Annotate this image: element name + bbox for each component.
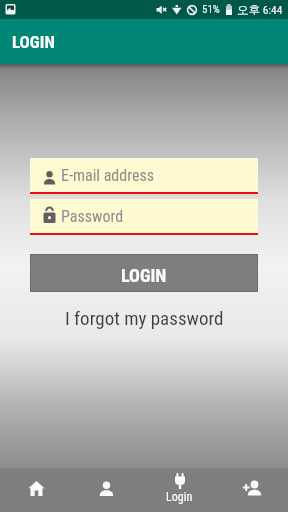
button[interactable]: E-mail address xyxy=(30,158,258,194)
button[interactable]: I forgot my password xyxy=(65,307,224,329)
button[interactable] xyxy=(216,468,288,512)
staticText: 51% xyxy=(202,3,220,16)
button[interactable]: LOGIN xyxy=(30,254,258,292)
button[interactable]: Login xyxy=(144,468,216,512)
staticText: LOGIN xyxy=(121,265,167,286)
staticText: Password xyxy=(61,207,124,226)
staticText: E-mail address xyxy=(61,166,155,185)
button[interactable] xyxy=(0,468,72,512)
button[interactable] xyxy=(72,468,144,512)
button[interactable]: Password xyxy=(30,199,258,235)
staticText: 오후 6:44 xyxy=(237,3,283,17)
staticText: Login xyxy=(166,490,193,504)
staticText: LOGIN xyxy=(12,32,55,52)
